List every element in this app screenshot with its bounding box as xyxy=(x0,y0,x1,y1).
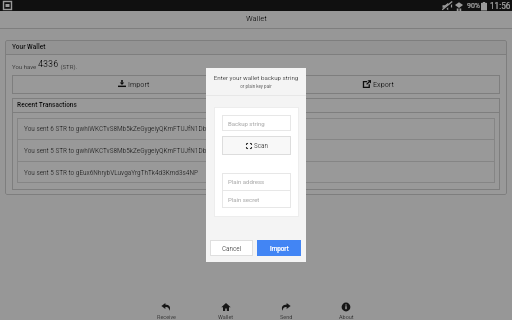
staticText: You sent 5 STR to gwhiWKCTvS8Mb5kZeGygei… xyxy=(24,147,284,155)
staticText: Enter your wallet backup string xyxy=(206,74,306,81)
staticText: You sent 6 STR to gwhiWKCTvS8Mb5kZeGygei… xyxy=(24,125,284,133)
staticText: Wallet xyxy=(218,314,234,320)
other: Battery xyxy=(481,2,487,11)
staticText: You have xyxy=(12,63,38,70)
button[interactable]: Cancel xyxy=(210,240,253,256)
staticText: Scan xyxy=(254,142,268,149)
button[interactable]: Import xyxy=(257,240,301,256)
other: Silent mode xyxy=(442,2,452,11)
staticText: Your Wallet xyxy=(12,43,46,51)
staticText: Export xyxy=(373,80,394,88)
staticText: Plain secret xyxy=(228,196,260,203)
staticText: 4336 xyxy=(38,59,59,70)
staticText: Import xyxy=(270,245,289,252)
staticText: Send xyxy=(280,314,293,320)
staticText: Plain address xyxy=(228,178,265,185)
staticText: (STR). xyxy=(59,63,78,70)
staticText: You sent 5 STR to gEux6NhrybVLuvgaYrgThT… xyxy=(24,169,199,177)
staticText: Backup string xyxy=(228,120,265,127)
staticText: Wallet xyxy=(246,14,267,23)
staticText: 11:56 xyxy=(490,1,511,11)
staticText: Cancel xyxy=(222,245,242,252)
staticText: Receive xyxy=(157,314,176,320)
button[interactable]: Send xyxy=(256,288,316,320)
button[interactable]: Import xyxy=(12,75,255,94)
button[interactable]: Wallet xyxy=(196,288,256,320)
button[interactable]: Export xyxy=(256,75,500,94)
button[interactable]: You sent 5 STR to gEux6NhrybVLuvgaYrgThT… xyxy=(17,162,495,183)
button[interactable]: You sent 5 STR to gwhiWKCTvS8Mb5kZeGygei… xyxy=(17,140,495,161)
staticText: 90% xyxy=(467,2,480,10)
other: Screenshot xyxy=(3,1,12,10)
button[interactable]: Receive xyxy=(136,288,196,320)
other: Wi-Fi xyxy=(455,2,463,11)
button[interactable]: You sent 6 STR to gwhiWKCTvS8Mb5kZeGygei… xyxy=(17,118,495,139)
staticText: About xyxy=(339,314,354,320)
button[interactable]: About xyxy=(316,288,376,320)
button[interactable]: Scan xyxy=(222,136,291,155)
staticText: or plain key pair xyxy=(206,84,306,89)
staticText: Import xyxy=(128,80,150,88)
staticText: Recent Transactions xyxy=(17,101,77,109)
